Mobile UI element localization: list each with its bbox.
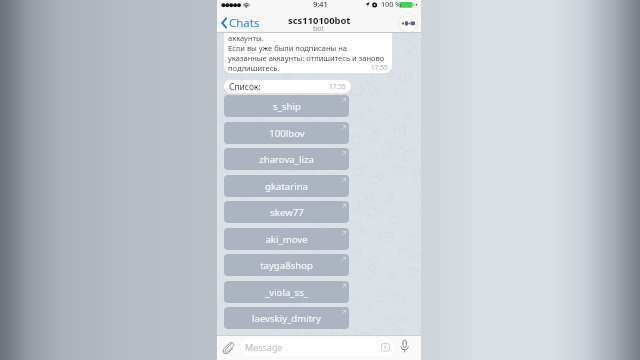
staticText: указанные аккаунты: отпишитесь и заново	[228, 53, 385, 63]
button[interactable]: 100lbov	[224, 122, 349, 144]
staticText: scs110100bot	[288, 14, 351, 27]
button[interactable]: Profile photo	[398, 13, 418, 33]
staticText: Chats	[229, 15, 260, 31]
staticText: 100lbov	[269, 127, 305, 140]
staticText: tayga8shop	[260, 259, 313, 272]
button[interactable]: Message	[240, 338, 394, 356]
staticText: s_ship	[273, 100, 301, 113]
staticText: aki_move	[265, 233, 308, 246]
staticText: bot	[313, 24, 325, 34]
button[interactable]: s_ship	[224, 95, 349, 117]
staticText: 9:41	[313, 0, 328, 10]
button[interactable]: Attach file	[221, 340, 235, 354]
staticText: zharova_liza	[259, 153, 314, 166]
staticText: Message	[245, 341, 283, 353]
button[interactable]: skew77	[224, 201, 349, 223]
button[interactable]: laevskiy_dmitry	[224, 307, 349, 329]
button[interactable]: Record voice message	[397, 338, 412, 355]
staticText: 100 %	[381, 0, 402, 9]
staticText: Список:	[229, 81, 261, 93]
staticText: skew77	[270, 206, 304, 219]
button[interactable]: tayga8shop	[224, 254, 349, 276]
other: Stickers	[381, 343, 390, 352]
staticText: 17:55	[371, 63, 388, 72]
staticText: laevskiy_dmitry	[252, 312, 321, 325]
staticText: _viola_ss_	[265, 286, 308, 299]
button[interactable]: aki_move	[224, 228, 349, 250]
button[interactable]: gkatarina	[224, 175, 349, 197]
button[interactable]: zharova_liza	[224, 148, 349, 170]
staticText: Если вы уже были подписаны на	[228, 43, 347, 53]
button[interactable]: _viola_ss_	[224, 281, 349, 303]
button[interactable]: Chats	[219, 13, 262, 33]
staticText: 17:55	[329, 82, 346, 91]
staticText: gkatarina	[265, 180, 308, 193]
staticText: аккаунты.	[228, 33, 264, 43]
staticText: подлишитесь.	[228, 63, 280, 73]
